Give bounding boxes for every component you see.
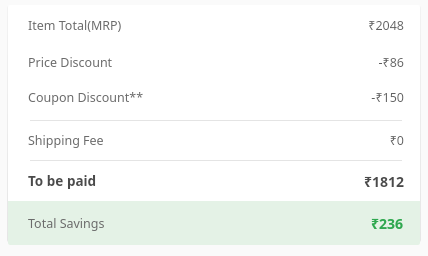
button[interactable]: To be paid: [8, 161, 420, 201]
staticText: Price Discount: [28, 54, 113, 71]
staticText: ₹1812: [363, 172, 404, 191]
staticText: Coupon Discount**: [28, 89, 144, 106]
button[interactable]: Price Discount: [8, 45, 420, 80]
staticText: Total Savings: [28, 215, 105, 232]
button[interactable]: Shipping Fee: [8, 121, 420, 160]
button[interactable]: Item Total(MRP): [8, 5, 420, 45]
button[interactable]: Total Savings: [8, 201, 420, 245]
staticText: -₹86: [378, 54, 404, 71]
staticText: ₹0: [389, 132, 404, 149]
staticText: ₹236: [371, 214, 404, 233]
staticText: Shipping Fee: [28, 132, 104, 149]
staticText: To be paid: [28, 172, 97, 190]
staticText: -₹150: [371, 89, 404, 106]
staticText: Item Total(MRP): [28, 17, 122, 34]
staticText: ₹2048: [368, 17, 404, 34]
button[interactable]: Coupon Discount**: [8, 80, 420, 115]
